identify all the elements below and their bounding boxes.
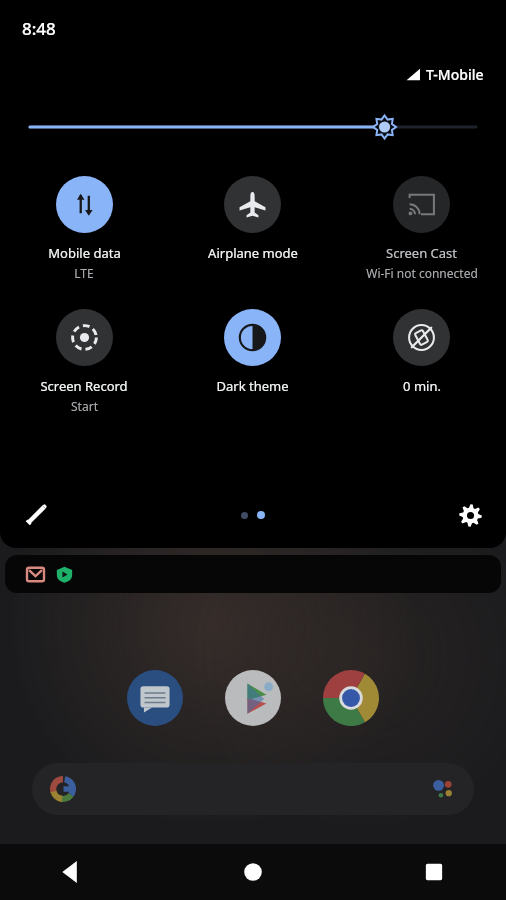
staticText: T-Mobile <box>426 65 484 84</box>
button[interactable]: Mobile data <box>0 176 168 281</box>
button[interactable]: Search <box>32 763 474 815</box>
button[interactable]: Brightness <box>0 110 506 144</box>
button[interactable]: Screen Record <box>0 309 168 414</box>
button[interactable]: Airplane mode <box>168 176 337 262</box>
button[interactable]: Messages <box>125 668 185 728</box>
staticText: 0 min. <box>403 377 441 395</box>
staticText: Mobile data <box>48 244 121 262</box>
button[interactable]: Dark theme <box>168 309 337 395</box>
staticText: Start <box>71 398 98 414</box>
staticText: LTE <box>74 265 94 281</box>
staticText: Screen Cast <box>386 244 457 262</box>
button[interactable]: Edit tiles <box>14 493 58 537</box>
button[interactable]: Recents <box>408 846 460 898</box>
button[interactable]: Screen Cast <box>337 176 506 281</box>
button[interactable] <box>5 555 501 593</box>
button[interactable]: Back <box>46 846 98 898</box>
button[interactable]: Chrome <box>321 668 381 728</box>
button[interactable]: Play Store <box>223 668 283 728</box>
staticText: Dark theme <box>216 377 289 395</box>
staticText: Screen Record <box>40 377 128 395</box>
button[interactable]: Settings <box>448 493 492 537</box>
button[interactable]: Home <box>227 846 279 898</box>
button[interactable]: Screen timeout <box>337 309 506 395</box>
staticText: 8:48 <box>22 17 56 40</box>
staticText: Wi-Fi not connected <box>366 265 478 281</box>
staticText: Airplane mode <box>208 244 298 262</box>
